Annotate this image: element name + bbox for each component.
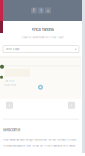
button[interactable]: Previous slide	[6, 102, 13, 109]
staticText: Welcome	[3, 127, 20, 132]
staticText: ▾	[75, 48, 76, 51]
staticText: Finca Tahona has been lovingly restored …	[3, 138, 76, 141]
button[interactable]: Next slide	[68, 102, 75, 109]
staticText: Beautiful accommodation in rural Spain	[21, 36, 63, 39]
staticText: a relaxed and peaceful rural retreat set…	[3, 144, 76, 147]
staticText: Camino del Rio	[4, 84, 16, 87]
staticText: +	[46, 8, 49, 13]
staticText: ‹	[8, 102, 10, 108]
staticText: f	[33, 8, 35, 13]
button[interactable]: Google Plus	[45, 7, 51, 13]
staticText: Finca Tahona	[31, 27, 53, 32]
staticText: t	[40, 8, 41, 13]
staticText: Calle Mayor	[5, 80, 15, 82]
staticText: Select a page	[6, 48, 19, 51]
button[interactable]: Twitter	[38, 7, 44, 13]
button[interactable]: Select a page	[3, 46, 79, 53]
button[interactable]: Facebook	[31, 7, 37, 13]
staticText: ›	[70, 102, 72, 108]
